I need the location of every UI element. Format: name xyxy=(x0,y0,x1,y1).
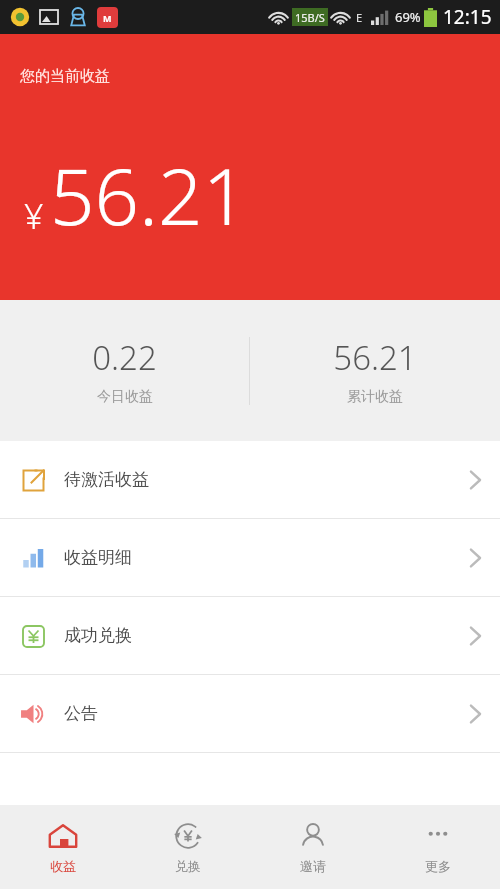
button[interactable]: 收益 xyxy=(0,805,125,889)
button[interactable]: 待激活收益 xyxy=(0,441,500,518)
button[interactable]: 成功兑换 xyxy=(0,597,500,674)
staticText: 69% xyxy=(395,8,421,26)
staticText: E xyxy=(356,10,363,25)
staticText: 收益明细 xyxy=(64,547,132,568)
staticText: ¥ xyxy=(24,193,44,239)
staticText: 您的当前收益 xyxy=(20,67,110,86)
staticText: 15B/S xyxy=(295,10,325,25)
staticText: 成功兑换 xyxy=(64,625,132,646)
staticText: 12:15 xyxy=(443,4,492,30)
staticText: M xyxy=(103,12,112,24)
staticText: 累计收益 xyxy=(347,388,403,406)
staticText: 收益 xyxy=(50,858,76,874)
staticText: 今日收益 xyxy=(97,388,153,406)
staticText: 兑换 xyxy=(175,858,201,874)
button[interactable]: 更多 xyxy=(375,805,500,889)
staticText: 公告 xyxy=(64,703,98,724)
button[interactable]: 兑换 xyxy=(125,805,250,889)
button[interactable]: 公告 xyxy=(0,675,500,752)
button[interactable]: 收益明细 xyxy=(0,519,500,596)
button[interactable]: 邀请 xyxy=(250,805,375,889)
staticText: 56.21 xyxy=(333,335,417,380)
staticText: 0.22 xyxy=(92,335,157,380)
staticText: 待激活收益 xyxy=(64,469,149,490)
staticText: 更多 xyxy=(425,858,451,874)
staticText: 邀请 xyxy=(300,858,326,874)
staticText: 56.21 xyxy=(50,142,248,248)
